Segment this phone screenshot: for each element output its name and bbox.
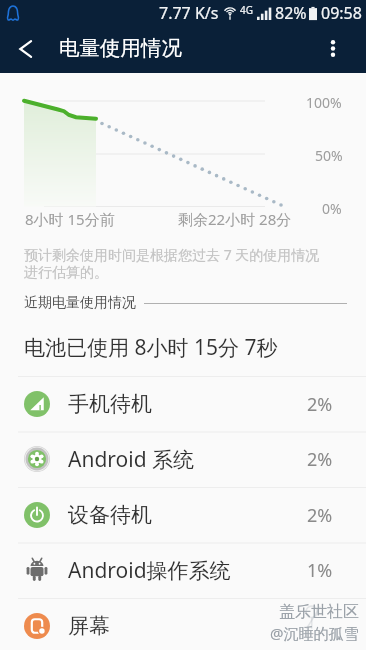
staticText: 50%: [315, 146, 343, 165]
button[interactable]: 屏幕: [0, 599, 366, 650]
staticText: 2%: [307, 392, 333, 417]
staticText: 2%: [307, 503, 333, 528]
staticText: 09:58: [321, 2, 362, 24]
staticText: 手机待机: [68, 391, 152, 417]
staticText: 近期电量使用情况: [24, 294, 136, 312]
staticText: 0%: [322, 199, 342, 218]
staticText: 82%: [275, 2, 307, 24]
button[interactable]: Android操作系统: [0, 543, 366, 599]
button[interactable]: 设备待机: [0, 488, 366, 544]
staticText: 预计剩余使用时间是根据您过去 7 天的使用情况 进行估算的。: [24, 245, 320, 281]
staticText: @沉睡的孤雪: [270, 623, 359, 643]
staticText: 剩余22小时 28分: [178, 209, 292, 229]
staticText: 屏幕: [68, 613, 110, 639]
staticText: 电池已使用 8小时 15分 7秒: [24, 333, 278, 362]
staticText: Android 系统: [68, 445, 195, 474]
staticText: 1%: [307, 558, 333, 583]
staticText: 2%: [307, 447, 333, 472]
button[interactable]: Android 系统: [0, 432, 366, 488]
button[interactable]: 手机待机: [0, 377, 366, 433]
staticText: 电量使用情况: [59, 35, 182, 61]
staticText: 8小时 15分前: [25, 209, 115, 229]
staticText: Android操作系统: [68, 556, 231, 585]
staticText: 4G: [240, 3, 253, 17]
button[interactable]: Back: [0, 26, 48, 73]
staticText: 设备待机: [68, 502, 152, 528]
button[interactable]: More options: [313, 26, 353, 73]
staticText: 7.77 K/s: [159, 2, 219, 24]
staticText: 盖乐世社区: [279, 602, 359, 622]
staticText: 100%: [306, 93, 342, 112]
